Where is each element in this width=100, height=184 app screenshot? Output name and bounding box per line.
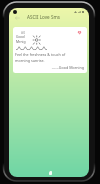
staticText: #0: [21, 30, 26, 34]
button[interactable]: #0: [13, 27, 87, 73]
button[interactable]: Navigate up: [11, 12, 23, 23]
staticText: ASCII Love Sms: [27, 14, 60, 20]
button[interactable]: Compose message: [49, 171, 52, 175]
staticText: Feel the freshness & touch of morning su…: [15, 52, 66, 63]
staticText: ------Good Morning: [13, 65, 84, 70]
button[interactable]: Favorite: [76, 29, 83, 36]
staticText: Good: [16, 34, 25, 39]
staticText: Mrnig: [16, 39, 26, 44]
